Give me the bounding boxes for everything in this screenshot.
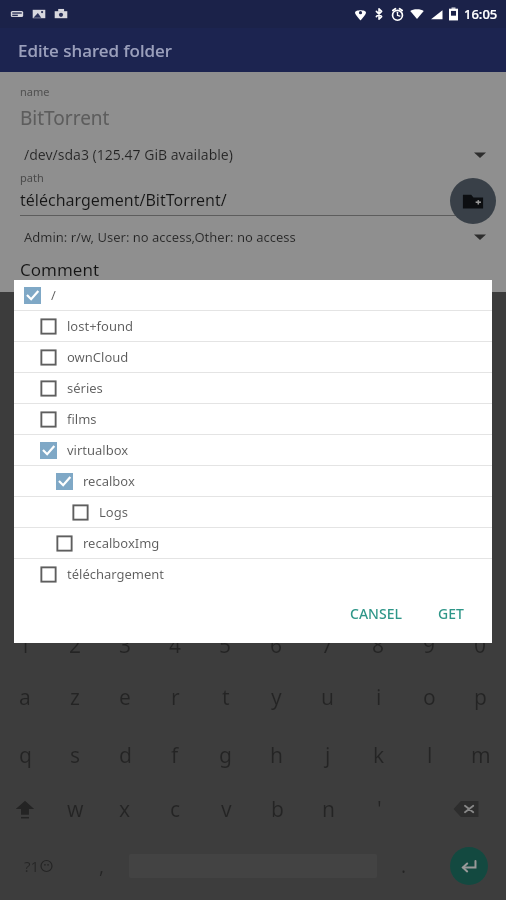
button[interactable]: n: [303, 788, 354, 830]
staticText: k: [373, 741, 385, 770]
button[interactable]: w: [50, 788, 100, 830]
staticText: j: [325, 741, 331, 770]
button[interactable]: d: [100, 736, 150, 774]
button[interactable]: e: [100, 678, 150, 716]
button[interactable]: 0: [455, 630, 506, 660]
button[interactable]: p: [455, 678, 506, 716]
staticText: 0: [474, 631, 487, 660]
button[interactable]: ownCloud: [14, 342, 492, 372]
button[interactable]: recalbox: [14, 466, 492, 496]
staticText: /dev/sda3 (125.47 GiB available): [24, 145, 474, 164]
button[interactable]: 9: [404, 630, 455, 660]
button[interactable]: a: [0, 678, 50, 716]
staticText: i: [376, 683, 382, 712]
staticText: recalbox: [83, 472, 135, 490]
staticText: x: [119, 795, 131, 824]
button[interactable]: Backspace: [425, 788, 506, 830]
button[interactable]: m: [455, 736, 506, 774]
button[interactable]: b: [252, 788, 303, 830]
button[interactable]: z: [50, 678, 100, 716]
button[interactable]: o: [404, 678, 455, 716]
staticText: 6: [270, 631, 283, 660]
button[interactable]: g: [200, 736, 251, 774]
button[interactable]: Shift: [0, 788, 50, 830]
button[interactable]: films: [14, 404, 492, 434]
button[interactable]: 8: [353, 630, 404, 660]
staticText: CANSEL: [350, 604, 402, 623]
button[interactable]: 4: [150, 630, 200, 660]
staticText: GET: [438, 604, 464, 623]
staticText: v: [221, 795, 232, 824]
button[interactable]: Logs: [14, 497, 492, 527]
button[interactable]: GET: [428, 598, 474, 629]
button[interactable]: CANSEL: [340, 598, 412, 629]
staticText: Edite shared folder: [18, 39, 173, 62]
staticText: téléchargement: [67, 565, 165, 583]
staticText: a: [19, 683, 31, 712]
staticText: p: [474, 683, 487, 712]
button[interactable]: h: [251, 736, 302, 774]
staticText: b: [271, 795, 284, 824]
staticText: 9: [423, 631, 436, 660]
staticText: films: [67, 410, 97, 428]
button[interactable]: /: [14, 280, 492, 310]
staticText: lost+found: [67, 317, 133, 335]
button[interactable]: 2: [50, 630, 100, 660]
button[interactable]: Enter: [450, 847, 488, 885]
button[interactable]: q: [0, 736, 50, 774]
staticText: /: [51, 286, 56, 304]
staticText: .: [401, 853, 407, 879]
button[interactable]: x: [100, 788, 150, 830]
staticText: n: [322, 795, 335, 824]
staticText: l: [427, 741, 433, 770]
button[interactable]: 3: [100, 630, 150, 660]
staticText: r: [171, 683, 180, 712]
button[interactable]: 6: [251, 630, 302, 660]
staticText: g: [219, 741, 232, 770]
button[interactable]: téléchargement: [14, 559, 492, 589]
staticText: e: [119, 683, 131, 712]
staticText: ownCloud: [67, 348, 129, 366]
button[interactable]: séries: [14, 373, 492, 403]
staticText: m: [471, 741, 491, 770]
staticText: o: [423, 683, 436, 712]
button[interactable]: 1: [0, 630, 50, 660]
button[interactable]: u: [302, 678, 353, 716]
staticText: w: [67, 795, 84, 824]
button[interactable]: 5: [200, 630, 251, 660]
button[interactable]: k: [353, 736, 404, 774]
button[interactable]: s: [50, 736, 100, 774]
staticText: f: [171, 741, 179, 770]
button[interactable]: recalboxImg: [14, 528, 492, 558]
staticText: 2: [69, 631, 82, 660]
staticText: téléchargement/BitTorrent/: [20, 189, 227, 211]
button[interactable]: y: [251, 678, 302, 716]
button[interactable]: Create new folder: [450, 178, 496, 224]
staticText: h: [270, 741, 283, 770]
staticText: y: [271, 683, 282, 712]
staticText: z: [70, 683, 80, 712]
staticText: 4: [169, 631, 182, 660]
staticText: d: [119, 741, 132, 770]
staticText: BitTorrent: [20, 105, 110, 131]
button[interactable]: 7: [302, 630, 353, 660]
staticText: u: [321, 683, 334, 712]
staticText: t: [222, 683, 230, 712]
staticText: c: [170, 795, 181, 824]
button[interactable]: virtualbox: [14, 435, 492, 465]
staticText: q: [19, 741, 32, 770]
button[interactable]: lost+found: [14, 311, 492, 341]
button[interactable]: f: [150, 736, 200, 774]
